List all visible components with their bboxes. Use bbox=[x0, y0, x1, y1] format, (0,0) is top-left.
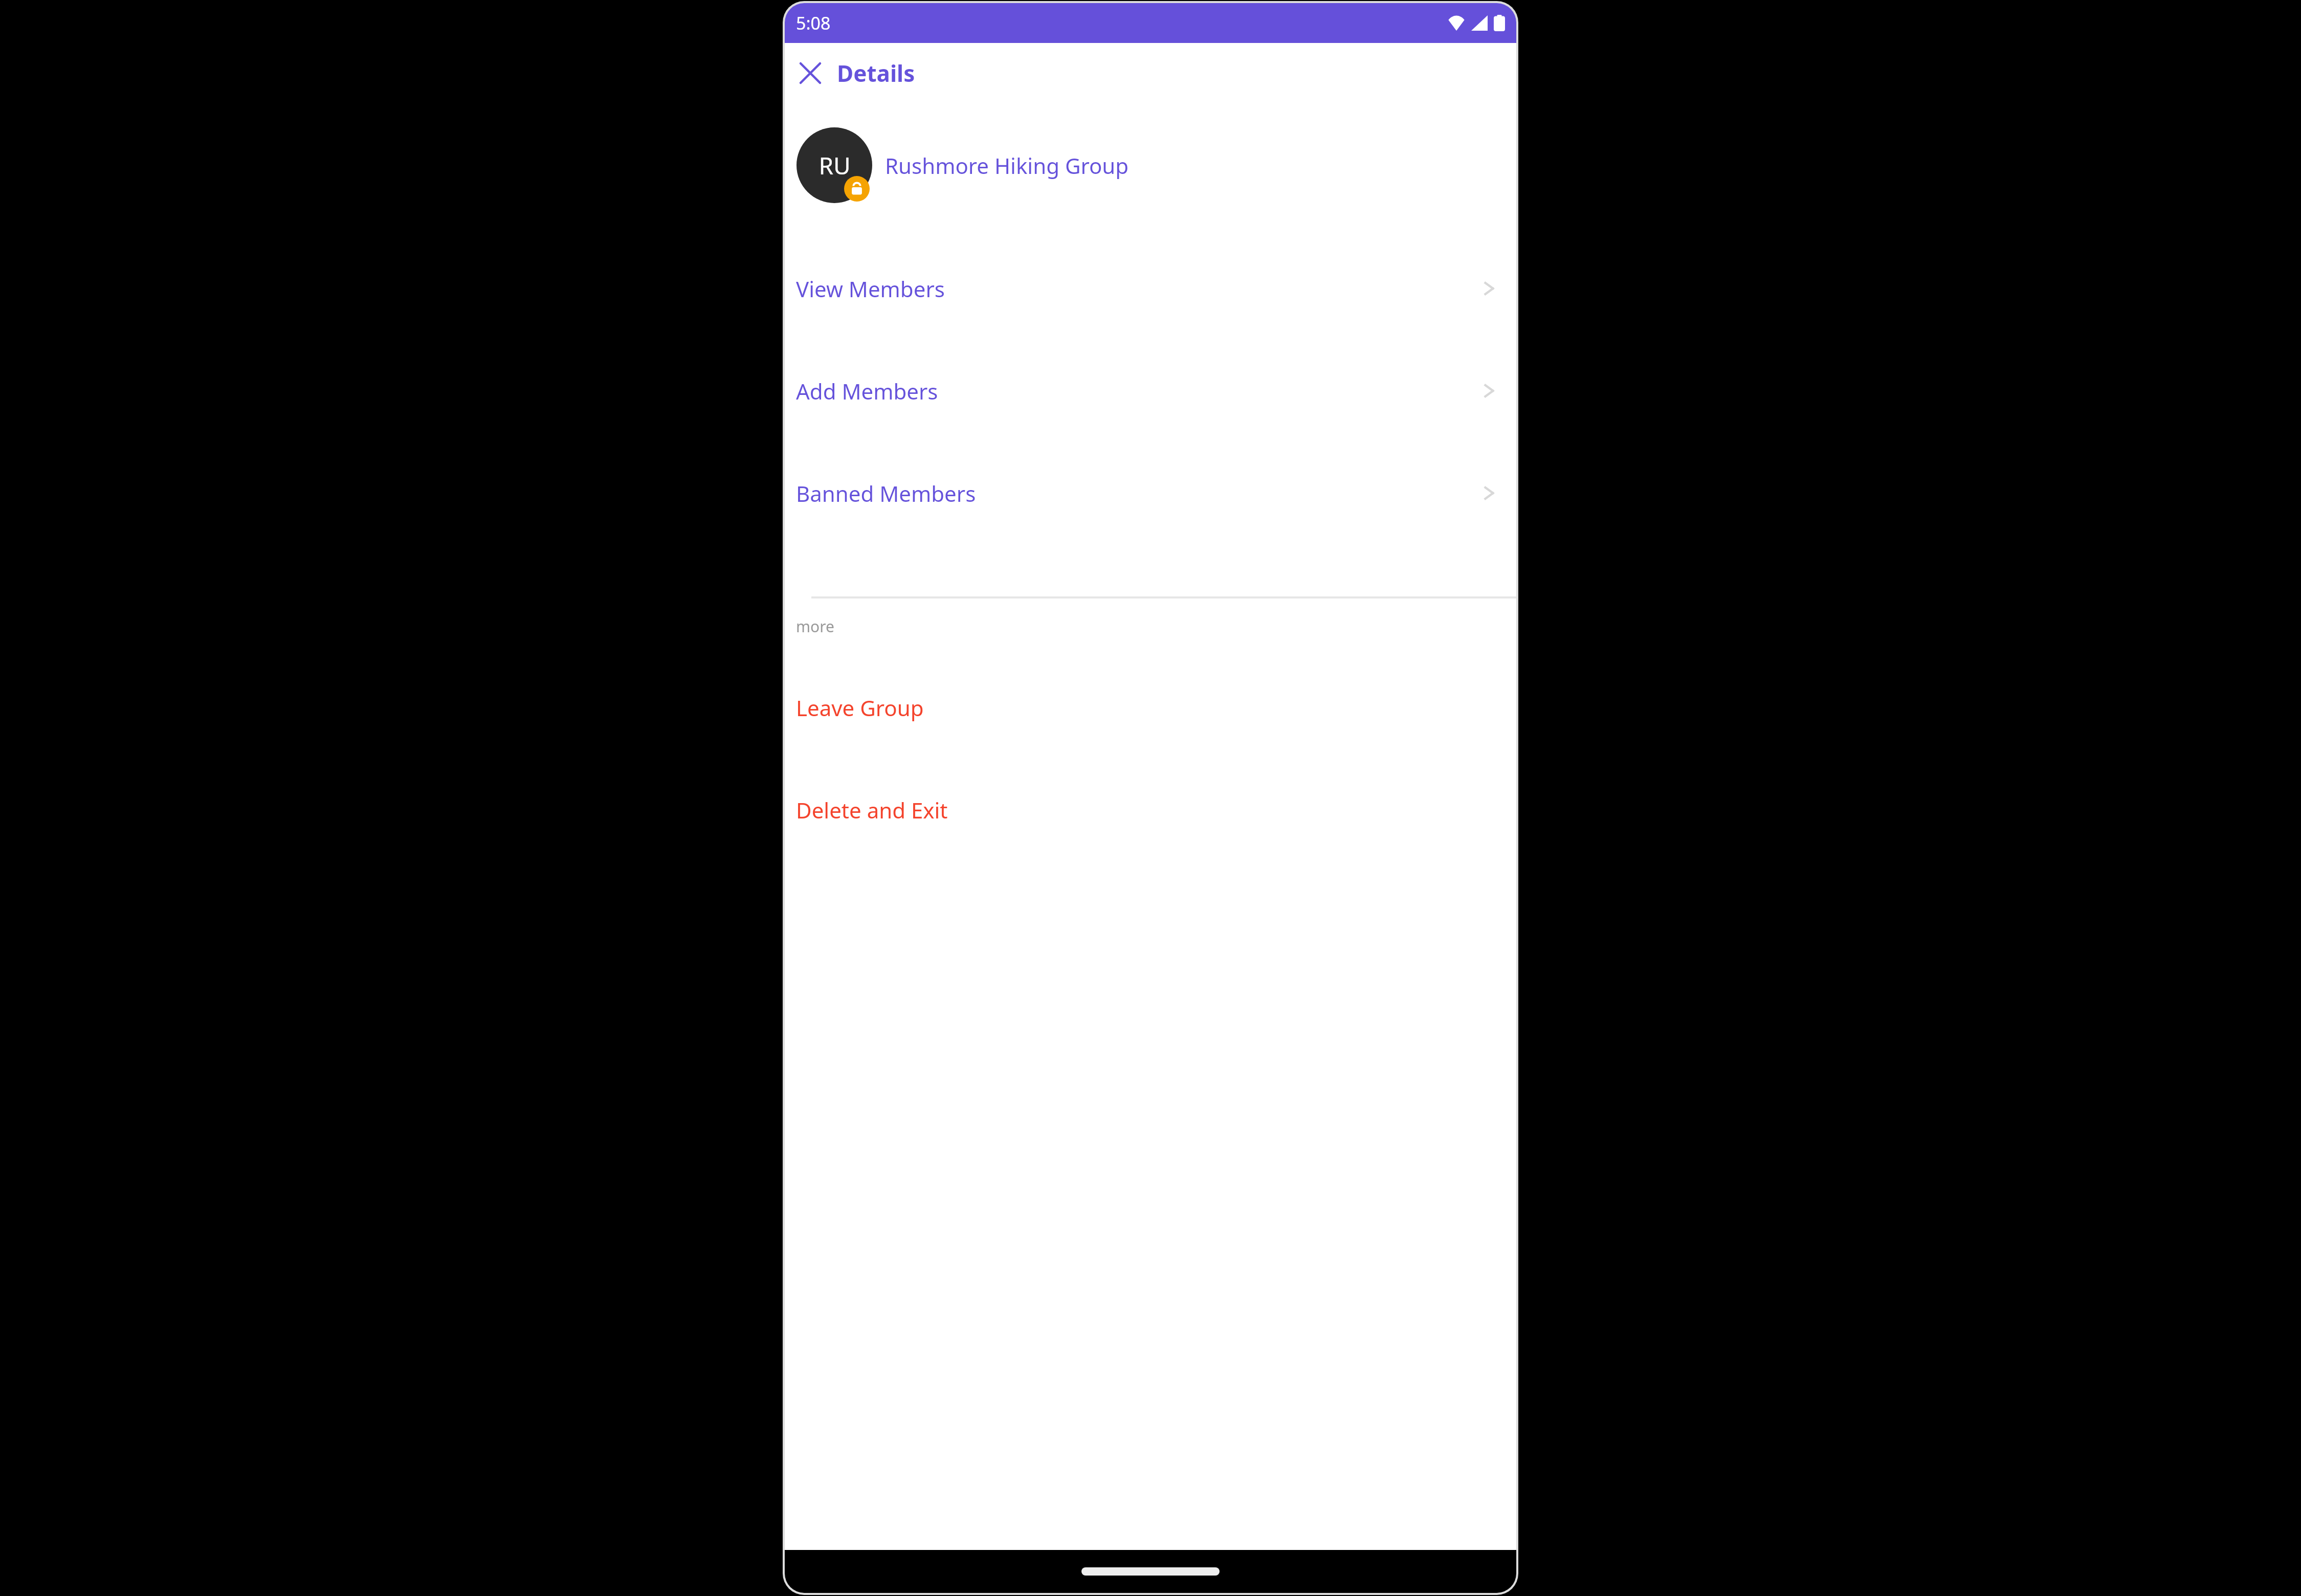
staticText: more bbox=[796, 616, 834, 637]
staticText: Add Members bbox=[796, 376, 938, 406]
staticText: Leave Group bbox=[796, 693, 924, 722]
staticText: View Members bbox=[796, 274, 945, 303]
button[interactable]: View Members bbox=[785, 237, 1516, 340]
staticText: Rushmore Hiking Group bbox=[885, 151, 1129, 180]
staticText: Banned Members bbox=[796, 479, 976, 508]
button[interactable]: Leave Group bbox=[785, 656, 1516, 759]
staticText: RU bbox=[818, 149, 851, 182]
button[interactable]: Delete and Exit bbox=[785, 759, 1516, 861]
button[interactable]: Close bbox=[791, 54, 830, 93]
staticText: Delete and Exit bbox=[796, 795, 948, 825]
button[interactable]: RU bbox=[785, 127, 1516, 204]
staticText: 5:08 bbox=[796, 11, 831, 35]
button[interactable]: Banned Members bbox=[785, 442, 1516, 544]
staticText: Details bbox=[837, 58, 915, 88]
button[interactable]: Add Members bbox=[785, 340, 1516, 442]
